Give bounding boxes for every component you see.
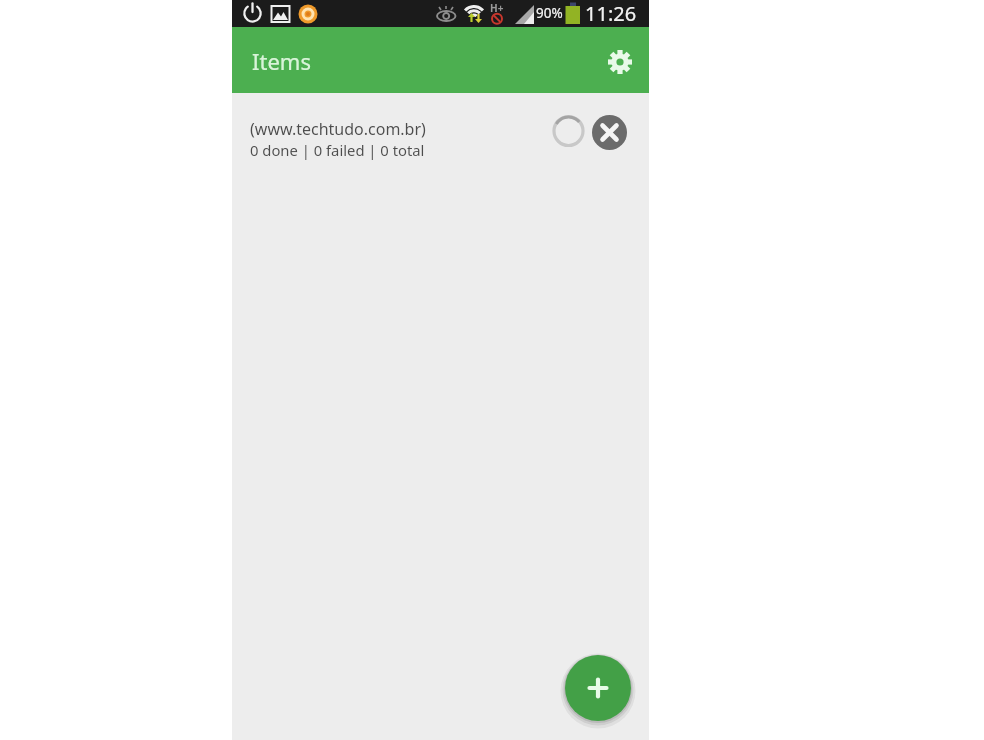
- button[interactable]: [592, 115, 627, 150]
- staticText: 90%: [536, 4, 563, 22]
- staticText: H+: [490, 1, 504, 15]
- button[interactable]: (www.techtudo.com.br): [232, 93, 649, 171]
- staticText: 0 done | 0 failed | 0 total: [250, 140, 425, 160]
- button[interactable]: [600, 42, 640, 82]
- button[interactable]: [565, 655, 631, 721]
- staticText: (www.techtudo.com.br): [250, 118, 426, 140]
- staticText: 11:26: [585, 0, 637, 27]
- staticText: Items: [252, 46, 311, 76]
